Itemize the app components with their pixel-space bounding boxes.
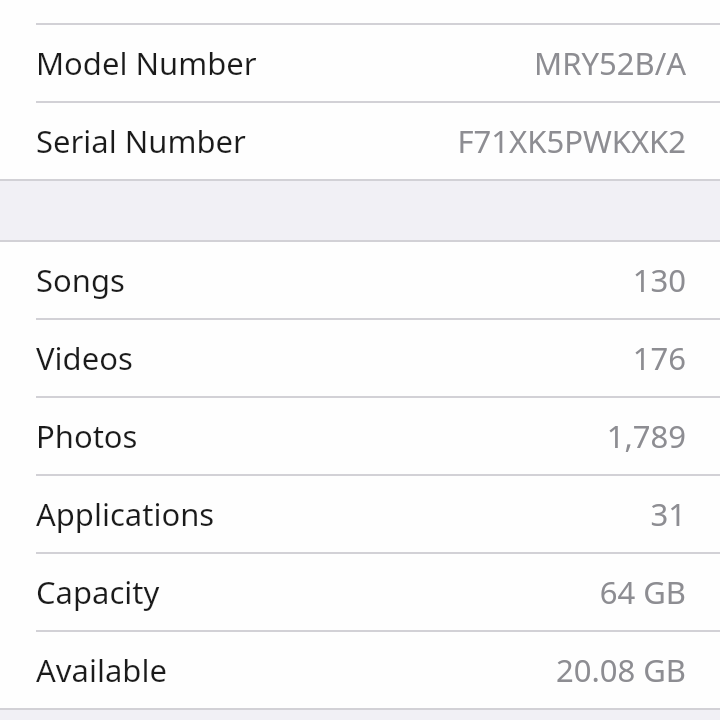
staticText: Songs (36, 259, 125, 301)
staticText: 64 GB (599, 571, 686, 613)
button[interactable]: Songs (0, 242, 720, 318)
staticText: Applications (36, 493, 215, 535)
staticText: 31 (650, 493, 686, 535)
button[interactable]: Videos (0, 320, 720, 396)
button[interactable]: Serial Number (0, 103, 720, 179)
staticText: Available (36, 649, 167, 691)
staticText: F71XK5PWKXK2 (457, 120, 686, 162)
button[interactable]: Applications (0, 476, 720, 552)
button[interactable]: Model Number (0, 25, 720, 101)
button[interactable]: Available (0, 632, 720, 708)
staticText: 20.08 GB (555, 649, 686, 691)
button[interactable]: Capacity (0, 554, 720, 630)
button[interactable]: Photos (0, 398, 720, 474)
staticText: Videos (36, 337, 133, 379)
staticText: MRY52B/A (534, 42, 686, 84)
staticText: Model Number (36, 42, 257, 84)
staticText: Capacity (36, 571, 160, 613)
staticText: 1,789 (606, 415, 686, 457)
staticText: Serial Number (36, 120, 246, 162)
staticText: 176 (632, 337, 686, 379)
staticText: Photos (36, 415, 138, 457)
staticText: 130 (632, 259, 686, 301)
